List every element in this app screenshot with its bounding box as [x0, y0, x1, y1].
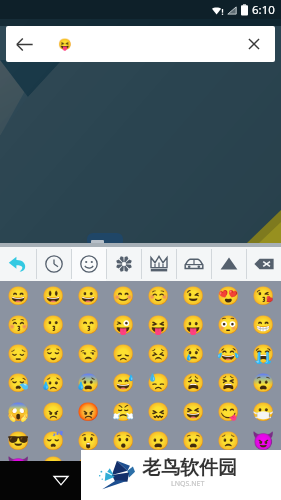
button[interactable]: 😓	[141, 368, 176, 397]
staticText: 😒	[77, 343, 100, 364]
staticText: 😰	[77, 372, 100, 393]
button[interactable]: 😪	[0, 368, 36, 397]
button[interactable]: 👿	[0, 455, 36, 461]
staticText: 😭	[252, 343, 275, 364]
staticText: 😟	[217, 430, 240, 451]
button[interactable]: 😂	[211, 339, 246, 368]
button[interactable]: 😌	[36, 339, 71, 368]
staticText: 😣	[147, 343, 170, 364]
button[interactable]: Hide keyboard	[49, 468, 73, 492]
staticText: ☺️	[147, 285, 170, 306]
staticText: 😳	[217, 314, 240, 335]
staticText: 😇	[182, 455, 205, 461]
button[interactable]: Food	[141, 247, 176, 281]
button[interactable]: 😔	[0, 339, 36, 368]
button[interactable]: Back	[0, 247, 36, 281]
button[interactable]: 😨	[246, 368, 281, 397]
button[interactable]: 😆	[176, 397, 211, 426]
staticText: 😫	[217, 372, 240, 393]
staticText: 😪	[7, 372, 30, 393]
button[interactable]: 😞	[106, 339, 141, 368]
button[interactable]: Back	[6, 26, 42, 62]
button[interactable]: Clear	[236, 26, 272, 62]
button[interactable]: 😟	[211, 426, 246, 455]
button[interactable]: Back	[6, 26, 275, 62]
button[interactable]: 😫	[211, 368, 246, 397]
button[interactable]: Objects	[211, 247, 246, 281]
button[interactable]: Travel	[176, 247, 211, 281]
button[interactable]: 😬	[141, 455, 176, 461]
button[interactable]: 😰	[71, 368, 106, 397]
staticText: 😓	[147, 372, 170, 393]
button[interactable]: 😢	[176, 339, 211, 368]
staticText: 😋	[217, 401, 240, 422]
button[interactable]: 😁	[246, 310, 281, 339]
staticText: 😩	[182, 372, 205, 393]
staticText: 😍	[217, 285, 240, 306]
staticText: 😔	[7, 343, 30, 364]
button[interactable]: 😅	[106, 368, 141, 397]
button[interactable]: 😃	[36, 281, 71, 310]
button[interactable]: 😛	[176, 310, 211, 339]
button[interactable]: 😩	[176, 368, 211, 397]
button[interactable]: 😮	[36, 455, 71, 461]
button[interactable]: 😠	[36, 397, 71, 426]
button[interactable]: Delete	[246, 247, 281, 281]
button[interactable]: 😭	[246, 339, 281, 368]
button[interactable]: 😍	[211, 281, 246, 310]
staticText: 😂	[217, 343, 240, 364]
button[interactable]: 😎	[0, 426, 36, 455]
button[interactable]: 😚	[0, 310, 36, 339]
staticText: 😝	[147, 314, 170, 335]
button[interactable]: Nature	[106, 247, 141, 281]
button[interactable]: 😉	[176, 281, 211, 310]
button[interactable]: 😥	[36, 368, 71, 397]
button[interactable]: ☺️	[141, 281, 176, 310]
staticText: 😞	[112, 343, 135, 364]
button[interactable]: 😧	[176, 426, 211, 455]
button[interactable]: Smileys	[71, 247, 106, 281]
button[interactable]: 😤	[106, 397, 141, 426]
button[interactable]: 😘	[246, 281, 281, 310]
button[interactable]: 😖	[141, 397, 176, 426]
button[interactable]: 😋	[211, 397, 246, 426]
staticText: 😆	[182, 401, 205, 422]
button[interactable]: 😱	[0, 397, 36, 426]
button[interactable]: 😀	[71, 281, 106, 310]
button[interactable]: 😜	[106, 310, 141, 339]
button[interactable]: 😊	[106, 281, 141, 310]
button[interactable]: Recent	[36, 247, 71, 281]
button[interactable]: 😴	[36, 426, 71, 455]
staticText: 😮	[42, 455, 65, 461]
staticText: 😅	[112, 372, 135, 393]
staticText: 😏	[217, 455, 240, 461]
staticText: 😌	[42, 343, 65, 364]
staticText: 😁	[252, 314, 275, 335]
button[interactable]: 😲	[71, 426, 106, 455]
staticText: 😊	[112, 285, 135, 306]
button[interactable]: 😡	[71, 397, 106, 426]
button[interactable]: 😷	[246, 397, 281, 426]
button[interactable]: 😣	[141, 339, 176, 368]
staticText: 😃	[42, 285, 65, 306]
button[interactable]: 😦	[141, 426, 176, 455]
staticText: 😱	[7, 401, 30, 422]
staticText: 😲	[77, 430, 100, 451]
button[interactable]: 😗	[36, 310, 71, 339]
button[interactable]: 😒	[71, 339, 106, 368]
button[interactable]: 😄	[0, 281, 36, 310]
staticText: 😧	[182, 430, 205, 451]
staticText: 😤	[112, 401, 135, 422]
button[interactable]: 😏	[211, 455, 246, 461]
button[interactable]: 😝	[141, 310, 176, 339]
button[interactable]: 😈	[246, 426, 281, 455]
button[interactable]: 😯	[106, 426, 141, 455]
button[interactable]: 😇	[176, 455, 211, 461]
button[interactable]: 😐	[71, 455, 106, 461]
staticText: 😄	[7, 285, 30, 306]
button[interactable]: 😙	[71, 310, 106, 339]
button[interactable]: 😳	[211, 310, 246, 339]
staticText: 😦	[147, 430, 170, 451]
